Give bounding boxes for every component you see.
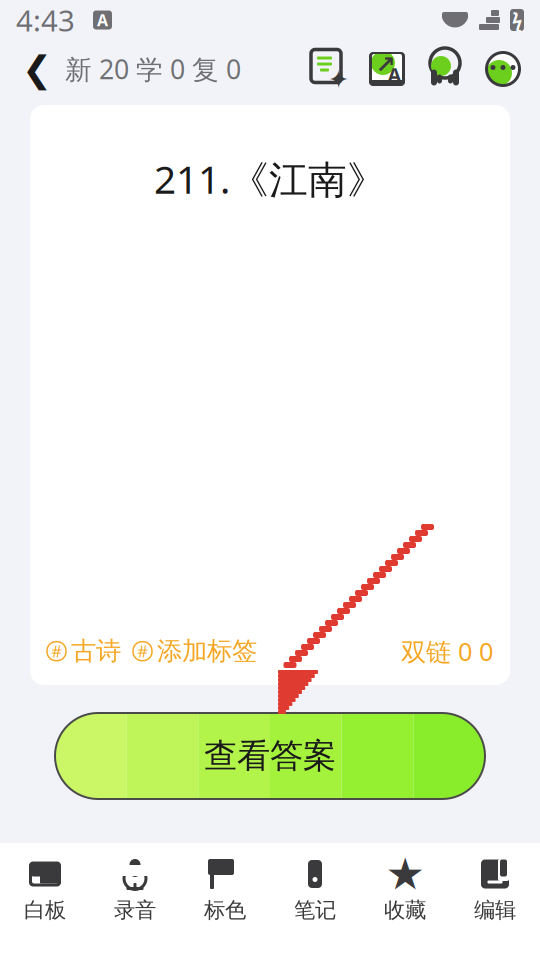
staticText: 新 20 学 0 复 0 [65, 51, 241, 87]
staticText: 古诗 [71, 636, 121, 667]
staticText: 添加标签 [157, 636, 257, 667]
staticText: 编辑 [474, 897, 516, 923]
staticText: 白板 [24, 897, 66, 923]
staticText: 双链 0 0 [401, 634, 493, 668]
staticText: # [51, 641, 61, 662]
button[interactable]: 标色 [180, 858, 270, 960]
staticText: 211.《江南》 [154, 153, 386, 204]
staticText: ❮ [22, 49, 52, 89]
button[interactable]: 双链 0 0 [401, 634, 493, 668]
staticText: A [97, 9, 108, 31]
button[interactable]: 翻译 [358, 40, 416, 98]
staticText: 收藏 [384, 897, 426, 923]
button[interactable]: 更多 [474, 40, 532, 98]
button[interactable]: 笔记 [270, 858, 360, 960]
staticText: ✦ [328, 65, 349, 94]
staticText: 标色 [204, 897, 246, 923]
button[interactable]: 听力 [416, 40, 474, 98]
button[interactable]: 录音 [90, 858, 180, 960]
staticText: 录音 [114, 897, 156, 923]
button[interactable]: 白板 [0, 858, 90, 960]
button[interactable]: # [133, 636, 257, 667]
button[interactable]: ★ [360, 858, 450, 960]
staticText: ϟ [512, 8, 522, 32]
button[interactable]: # [47, 636, 121, 667]
button[interactable]: 编辑 [450, 858, 540, 960]
button[interactable]: AI 卡片 [300, 40, 358, 98]
staticText: A [387, 61, 401, 88]
staticText: ★ [385, 849, 424, 899]
staticText: 查看答案 [204, 735, 336, 776]
staticText: ↗ [375, 51, 395, 78]
button[interactable]: 查看答案 [55, 713, 485, 799]
staticText: # [137, 641, 147, 662]
button[interactable]: ❮ [8, 40, 255, 98]
staticText: 4:43 [16, 0, 75, 39]
staticText: 笔记 [294, 897, 336, 923]
